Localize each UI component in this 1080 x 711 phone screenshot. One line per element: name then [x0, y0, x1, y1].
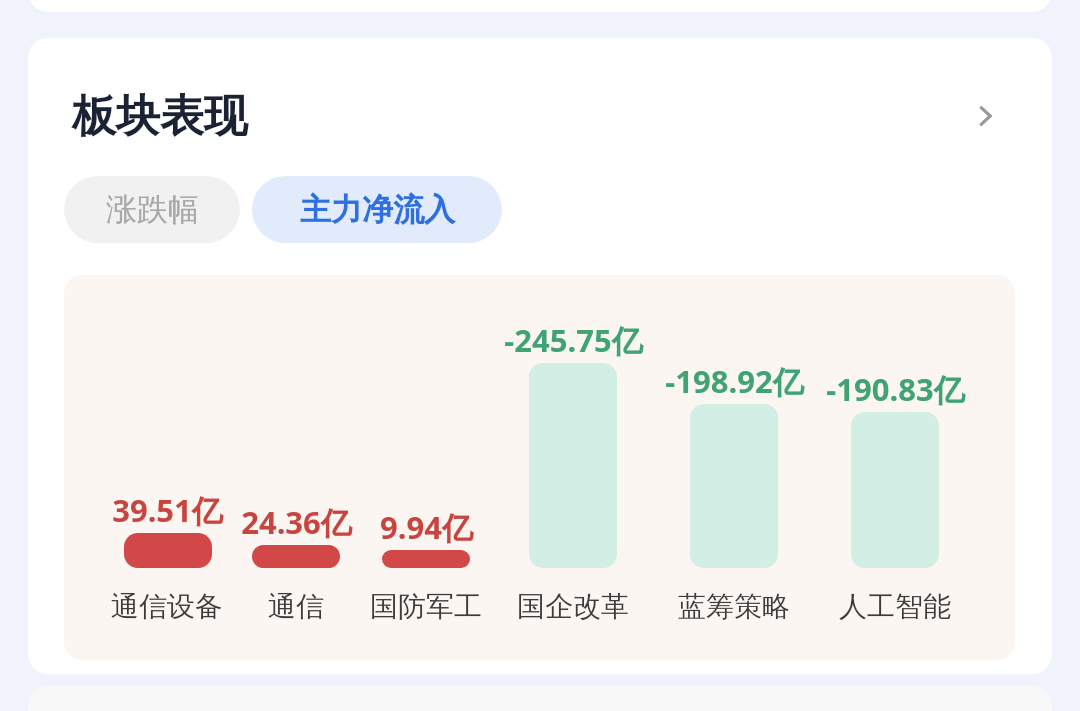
staticText: 人工智能 [839, 589, 951, 624]
button[interactable]: 涨跌幅 [64, 176, 240, 243]
staticText: -245.75亿 [504, 319, 643, 361]
staticText: -198.92亿 [665, 360, 804, 402]
button[interactable]: 板块表现 [72, 85, 1008, 147]
staticText: 通信设备 [111, 589, 223, 624]
staticText: -190.83亿 [826, 368, 965, 410]
button[interactable]: 39.51亿 [64, 275, 1015, 660]
staticText: 国企改革 [517, 589, 629, 624]
staticText: 通信 [268, 589, 324, 624]
button[interactable]: 主力净流入 [252, 176, 502, 243]
staticText: 39.51亿 [112, 489, 223, 531]
staticText: 蓝筹策略 [678, 589, 790, 624]
staticText: 涨跌幅 [106, 190, 199, 229]
staticText: 24.36亿 [241, 501, 352, 543]
staticText: 9.94亿 [380, 506, 473, 548]
staticText: 国防军工 [370, 589, 482, 624]
other: 查看更多 [964, 94, 1008, 138]
staticText: 板块表现 [72, 89, 248, 144]
staticText: 主力净流入 [300, 190, 455, 229]
